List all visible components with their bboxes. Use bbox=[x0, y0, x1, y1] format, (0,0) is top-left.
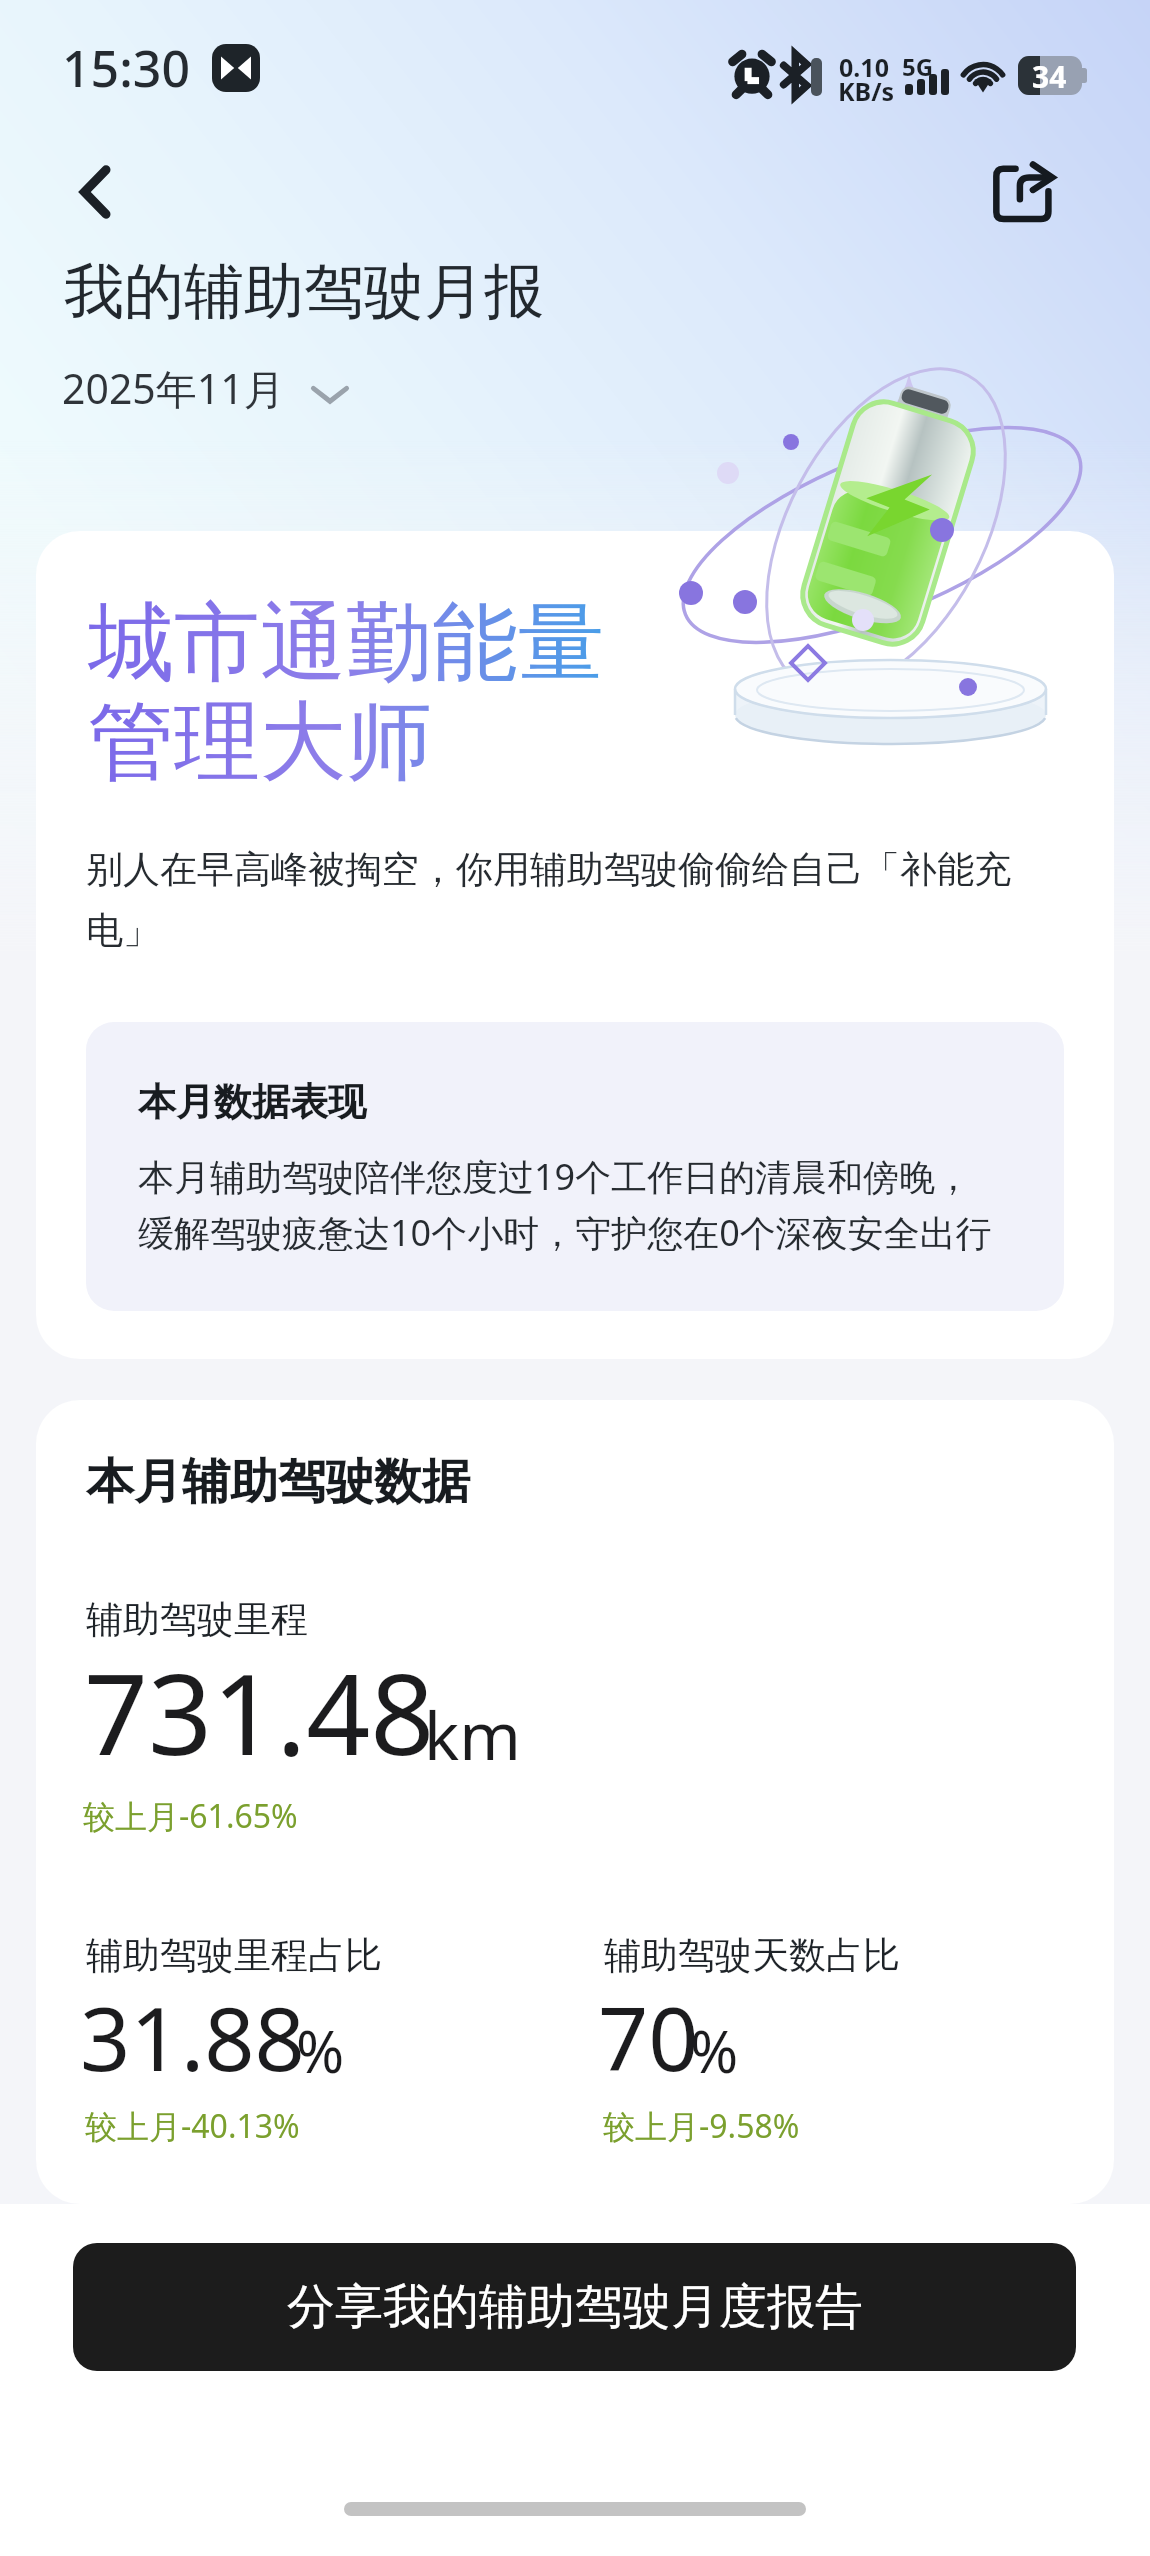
staticText: 2025年11月 bbox=[62, 360, 285, 416]
staticText: % bbox=[296, 2011, 345, 2090]
staticText: 34 bbox=[1032, 56, 1067, 95]
button[interactable]: 分享我的辅助驾驶月度报告 bbox=[73, 2243, 1076, 2371]
staticText: 分享我的辅助驾驶月度报告 bbox=[287, 2277, 863, 2337]
staticText: 较上月-61.65% bbox=[83, 1794, 298, 1838]
staticText: 本月辅助驾驶数据 bbox=[86, 1452, 470, 1512]
staticText: 辅助驾驶里程 bbox=[86, 1596, 308, 1643]
staticText: 较上月-9.58% bbox=[603, 2104, 800, 2148]
staticText: 5G bbox=[902, 50, 934, 83]
staticText: 辅助驾驶里程占比 bbox=[86, 1932, 382, 1979]
staticText: 15:30 bbox=[62, 34, 190, 102]
staticText: 辅助驾驶天数占比 bbox=[604, 1932, 900, 1979]
button[interactable]: Back bbox=[50, 148, 138, 236]
staticText: 我的辅助驾驶月报 bbox=[64, 254, 544, 330]
staticText: 0.10 bbox=[839, 50, 889, 84]
staticText: 本月辅助驾驶陪伴您度过19个工作日的清晨和傍晚， 缓解驾驶疲惫达10个小时，守护… bbox=[138, 1152, 992, 1257]
staticText: 731.48 bbox=[84, 1635, 435, 1788]
staticText: KB/s bbox=[838, 74, 895, 108]
staticText: 别人在早高峰被掏空，你用辅助驾驶偷偷给自己「补能充 电」 bbox=[86, 846, 1011, 954]
staticText: 本月数据表现 bbox=[138, 1078, 366, 1126]
button[interactable]: Share bbox=[978, 148, 1068, 238]
staticText: 较上月-40.13% bbox=[85, 2104, 300, 2148]
staticText: km bbox=[424, 1689, 521, 1779]
button[interactable]: 2025年11月 bbox=[62, 360, 353, 416]
staticText: 31.88 bbox=[80, 1977, 305, 2097]
staticText: 城市通勤能量 管理大师 bbox=[88, 589, 604, 796]
staticText: % bbox=[690, 2011, 739, 2090]
staticText: 70 bbox=[598, 1977, 699, 2097]
